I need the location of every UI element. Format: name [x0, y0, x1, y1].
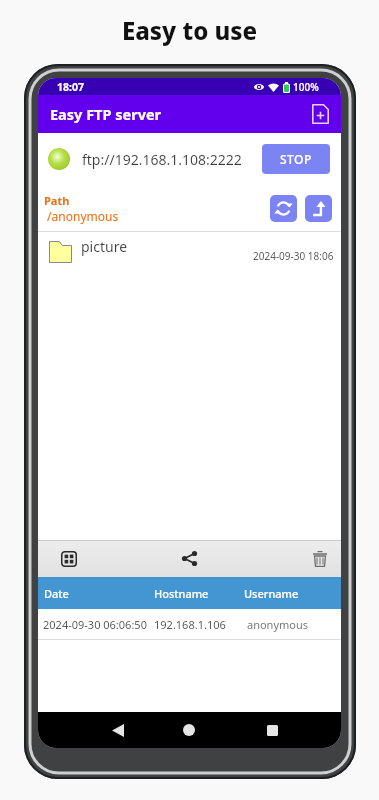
staticText: Path [44, 193, 70, 208]
staticText: ftp://192.168.1.108:2222 [82, 150, 242, 169]
button[interactable] [100, 712, 136, 748]
button[interactable] [254, 712, 290, 748]
button[interactable] [176, 545, 203, 572]
staticText: Easy to use [0, 14, 379, 47]
button[interactable]: STOP [262, 144, 330, 174]
staticText: Date [44, 586, 69, 601]
button[interactable]: 2024-09-30 06:06:50 [38, 609, 341, 639]
button[interactable] [305, 195, 332, 222]
staticText: 100% [293, 80, 319, 94]
button[interactable] [270, 195, 297, 222]
staticText: /anonymous [44, 208, 119, 224]
button[interactable] [171, 712, 207, 748]
staticText: 18:07 [57, 80, 84, 94]
staticText: 192.168.1.106 [154, 617, 226, 632]
staticText: 2024-09-30 06:06:50 [43, 617, 147, 632]
staticText: 2024-09-30 18:06 [253, 249, 334, 263]
button[interactable] [55, 545, 82, 572]
staticText: anonymous [247, 617, 309, 632]
button[interactable] [306, 545, 333, 572]
staticText: STOP [280, 151, 312, 167]
staticText: Easy FTP server [50, 104, 162, 124]
button[interactable]: picture [38, 232, 341, 273]
staticText: Username [244, 586, 299, 601]
staticText: Hostname [154, 586, 209, 601]
staticText: picture [81, 237, 128, 256]
button[interactable] [307, 101, 333, 127]
